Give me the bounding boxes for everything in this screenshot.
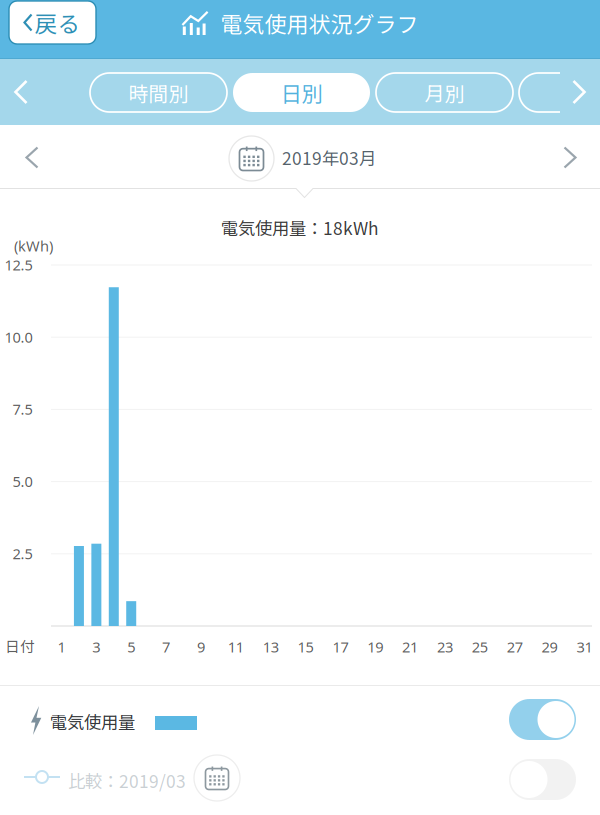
staticText: 27 <box>507 637 523 656</box>
staticText: 11 <box>228 637 244 656</box>
staticText: 21 <box>402 637 418 656</box>
staticText: 電気使用量：18kWh <box>221 215 379 240</box>
staticText: 23 <box>437 637 453 656</box>
button[interactable]: 日別 <box>233 73 370 112</box>
staticText: 3 <box>92 637 100 656</box>
button[interactable]: 月別 <box>376 73 513 112</box>
staticText: 2019年03月 <box>282 145 376 170</box>
button[interactable]: Next month <box>539 126 600 189</box>
staticText: 7 <box>162 637 170 656</box>
staticText: 日別 <box>280 77 322 108</box>
staticText: 12.5 <box>4 255 32 274</box>
staticText: 25 <box>472 637 488 656</box>
staticText: 31 <box>576 637 592 656</box>
button[interactable]: 電気使用量 <box>0 692 600 749</box>
staticText: 比較：2019/03 <box>68 768 186 793</box>
staticText: 2.5 <box>12 544 32 563</box>
button[interactable]: Previous month <box>1 126 63 189</box>
staticText: 時間別 <box>128 78 188 107</box>
staticText: 13 <box>263 637 279 656</box>
staticText: 17 <box>332 637 348 656</box>
staticText: 電気使用量 <box>50 709 135 734</box>
staticText: 9 <box>197 637 205 656</box>
staticText: 10.0 <box>4 327 32 347</box>
staticText: 7.5 <box>12 399 32 419</box>
button[interactable]: 2019年03月 <box>229 133 414 184</box>
staticText: 1 <box>57 637 65 656</box>
button[interactable]: 戻る <box>9 1 96 44</box>
staticText: 日付 <box>5 635 35 656</box>
button[interactable]: 比較：2019/03 <box>0 752 600 809</box>
button[interactable]: Next period <box>558 59 600 125</box>
staticText: 29 <box>541 637 557 656</box>
staticText: 5.0 <box>12 472 32 491</box>
button[interactable]: Previous period <box>0 59 42 125</box>
staticText: 15 <box>297 637 313 656</box>
staticText: 19 <box>367 637 383 656</box>
staticText: 月別 <box>424 78 464 107</box>
button[interactable] <box>519 73 600 112</box>
staticText: 5 <box>127 637 135 656</box>
staticText: 電気使用状況グラフ <box>220 7 418 39</box>
staticText: (kWh) <box>14 236 53 255</box>
staticText: 戻る <box>34 6 80 39</box>
button[interactable]: 時間別 <box>90 73 227 112</box>
